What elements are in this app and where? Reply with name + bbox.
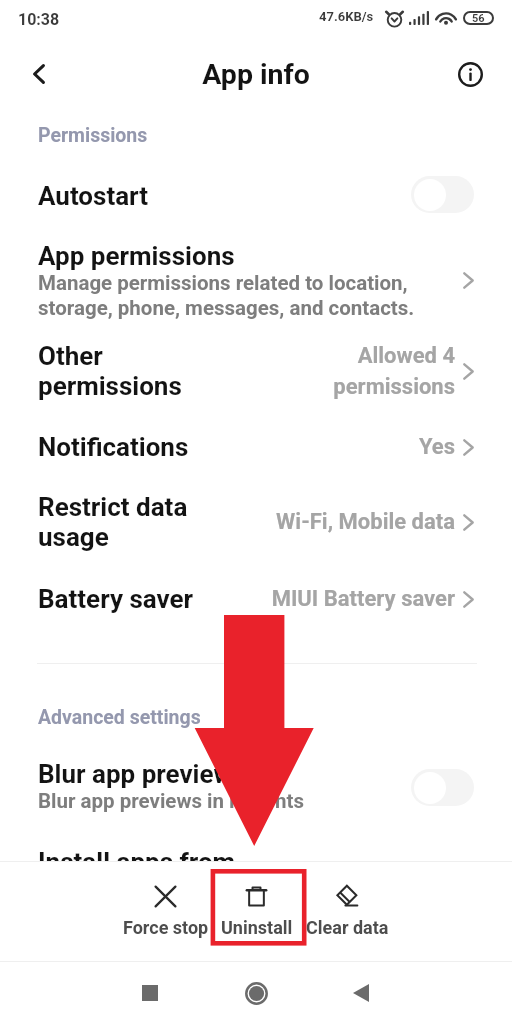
button[interactable]: Install apps from — [0, 847, 512, 877]
button[interactable]: Recent apps — [122, 965, 178, 1021]
staticText: Restrict data usage — [38, 492, 188, 552]
button[interactable]: Back — [333, 965, 389, 1021]
staticText: Yes — [418, 434, 455, 460]
button[interactable]: Toggle switch, off — [411, 769, 474, 806]
button[interactable]: About app — [446, 50, 494, 98]
staticText: App permissions — [38, 241, 235, 271]
button[interactable]: App permissions — [0, 241, 512, 326]
staticText: Notifications — [38, 432, 189, 462]
button[interactable]: Autostart — [0, 167, 512, 225]
staticText: Autostart — [38, 181, 149, 211]
button[interactable]: Notifications — [0, 432, 512, 462]
button[interactable]: Battery saver — [0, 584, 512, 614]
staticText: Blur app preview — [38, 759, 233, 789]
staticText: Clear data — [306, 917, 389, 938]
staticText: 47.6KB/s — [319, 9, 374, 24]
button[interactable]: Force stop — [120, 883, 211, 941]
button[interactable]: Uninstall — [211, 883, 302, 941]
staticText: Manage permissions related to location, … — [38, 271, 415, 320]
staticText: Wi-Fi, Mobile data — [276, 509, 455, 535]
staticText: Allowed 4 permissions — [333, 343, 455, 399]
button[interactable]: Back — [15, 50, 63, 98]
staticText: Advanced settings — [38, 706, 201, 729]
button[interactable]: Toggle switch, off — [411, 176, 474, 213]
staticText: Battery saver — [38, 584, 194, 614]
staticText: Blur app previews in Recents — [38, 789, 304, 813]
button[interactable]: Blur app preview — [0, 759, 512, 813]
button[interactable]: Home — [228, 965, 284, 1021]
button[interactable]: Clear data — [302, 883, 393, 941]
staticText: Permissions — [38, 124, 148, 147]
staticText: 10:38 — [18, 10, 60, 29]
staticText: 56 — [472, 12, 485, 25]
button[interactable]: Restrict data usage — [0, 492, 512, 552]
staticText: App info — [0, 58, 512, 91]
staticText: Force stop — [123, 917, 209, 938]
button[interactable]: Other permissions — [0, 341, 512, 401]
staticText: Other permissions — [38, 341, 182, 401]
staticText: Uninstall — [221, 917, 293, 938]
staticText: MIUI Battery saver — [271, 586, 455, 612]
staticText: Install apps from — [38, 847, 236, 877]
